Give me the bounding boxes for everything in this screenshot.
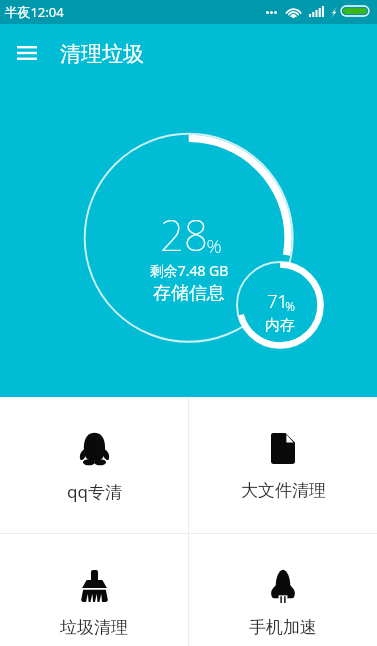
staticText: 大文件清理 [241,480,326,501]
staticText: 清理垃圾 [60,41,144,67]
staticText: 半夜12:04 [4,3,64,21]
staticText: 剩余7.48 GB [89,261,289,280]
staticText: 28 [160,206,208,263]
button[interactable]: 手机加速 [189,534,377,646]
staticText: 内存 [230,316,330,335]
button[interactable]: 大文件清理 [189,397,377,533]
button[interactable]: Menu [0,24,48,72]
staticText: qq专清 [67,480,122,503]
button[interactable]: qq专清 [0,397,188,533]
staticText: % [285,298,295,314]
staticText: % [206,233,222,259]
staticText: 垃圾清理 [60,617,128,638]
staticText: 存储信息 [89,282,289,305]
staticText: 手机加速 [249,617,317,638]
button[interactable]: 垃圾清理 [0,534,188,646]
staticText: 71 [267,289,288,314]
